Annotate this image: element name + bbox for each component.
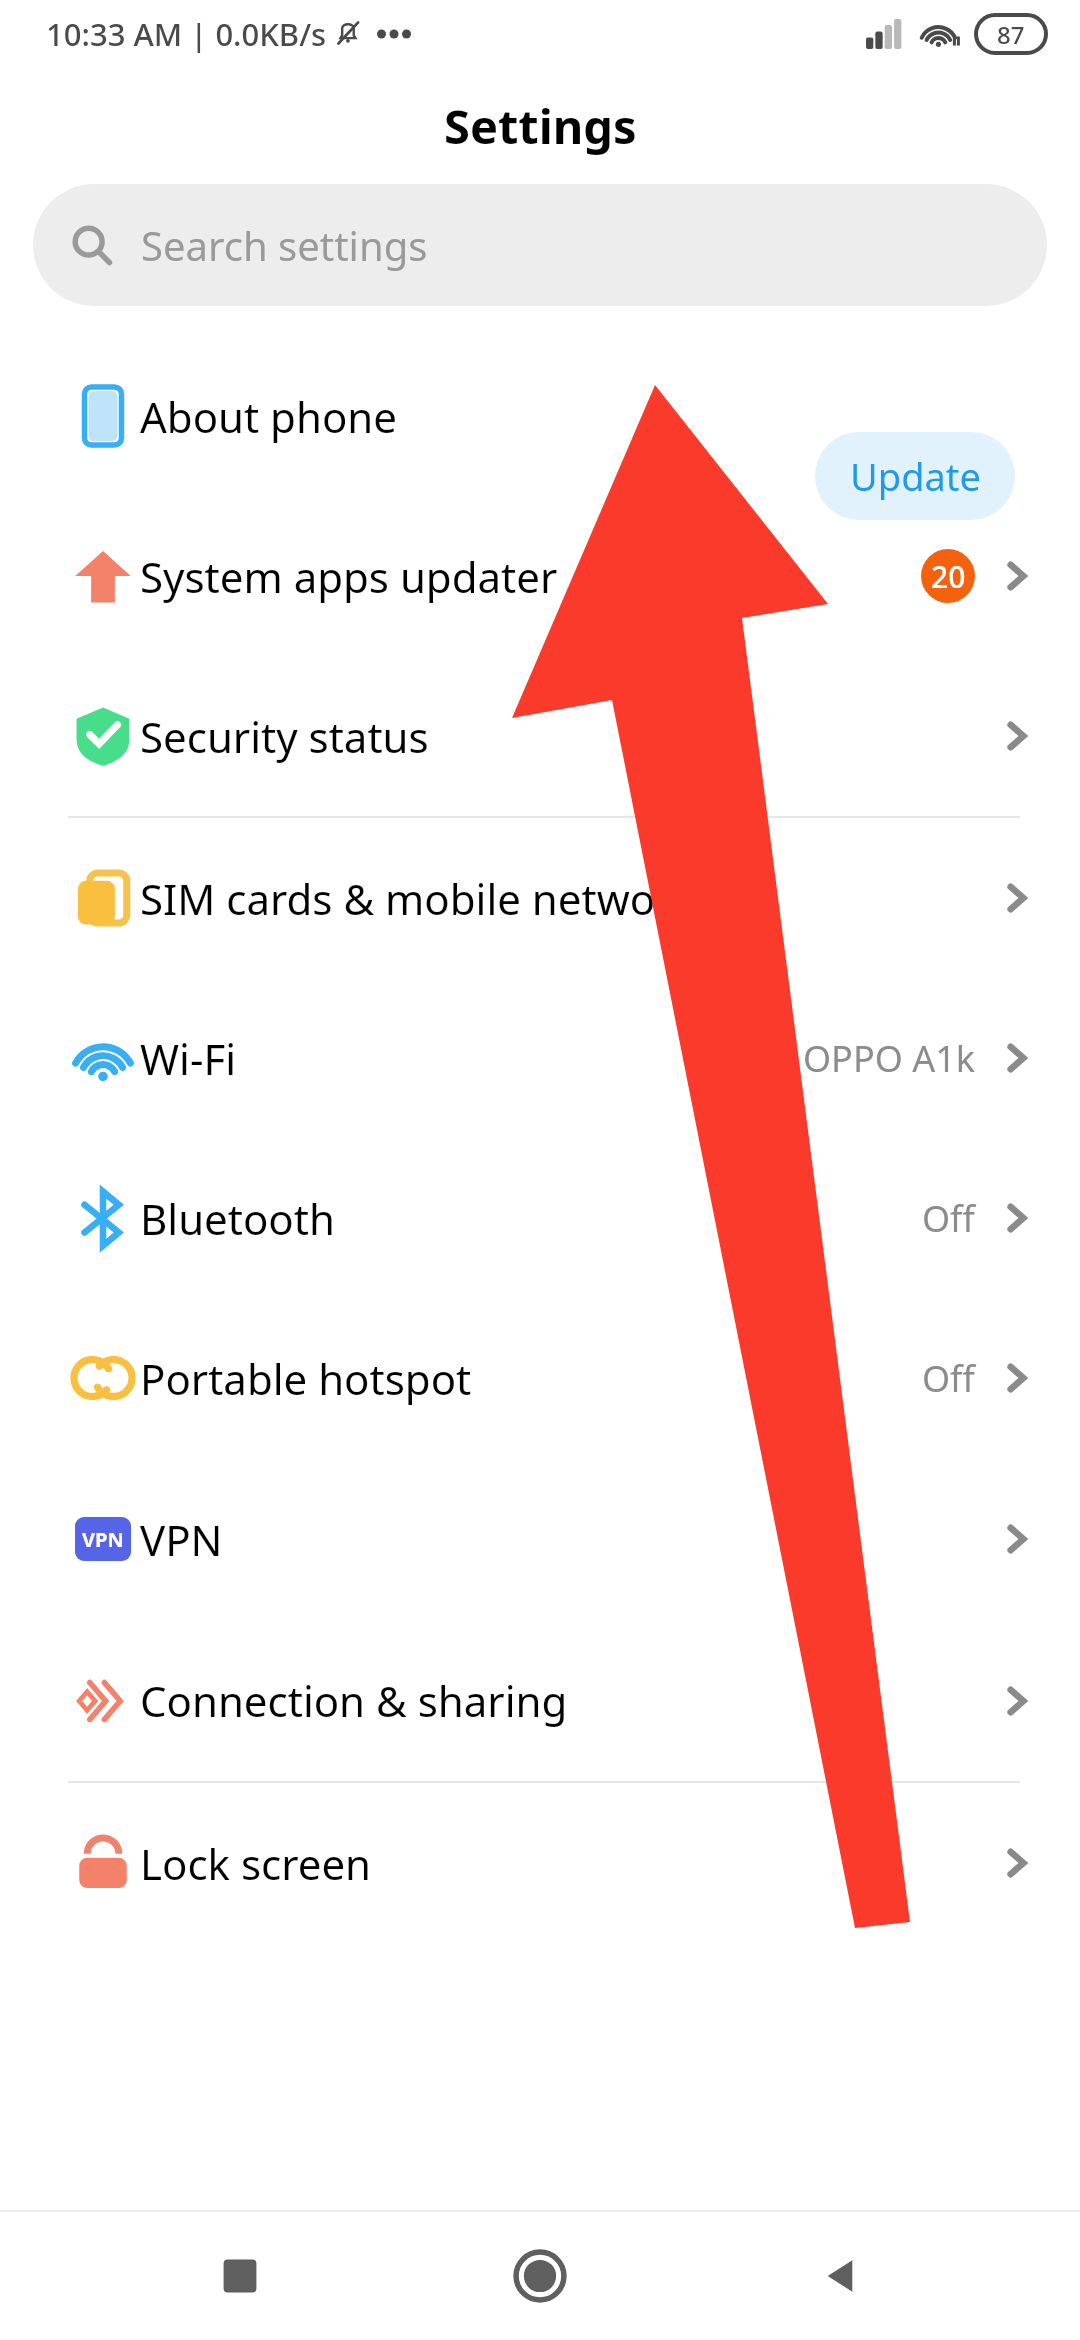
button[interactable]: Back (780, 2216, 900, 2336)
other: VPN (70, 1506, 136, 1572)
staticText: Wi-Fi (140, 1030, 237, 1087)
button[interactable]: Wi-Fi (0, 978, 1080, 1138)
staticText: SIM cards & mobile networks (140, 870, 715, 927)
staticText: Search settings (141, 218, 428, 272)
other: SIM cards and mobile networks (70, 865, 136, 931)
button[interactable]: Security status (0, 656, 1080, 816)
staticText: 10:33 AM | 0.0KB/s (46, 13, 327, 55)
button[interactable]: Bluetooth (0, 1138, 1080, 1298)
staticText: Off (922, 1354, 975, 1403)
staticText: Lock screen (140, 1835, 372, 1892)
staticText: VPN (82, 1526, 124, 1553)
staticText: System apps updater (140, 548, 558, 605)
staticText: Off (922, 1194, 975, 1243)
button[interactable]: About phone (0, 336, 1080, 496)
staticText: About phone (140, 388, 397, 445)
other: Bluetooth (70, 1185, 136, 1251)
other: System apps updater (70, 543, 136, 609)
button[interactable]: VPN (0, 1458, 1080, 1620)
other: Lock screen (70, 1830, 136, 1896)
staticText: Security status (140, 708, 429, 765)
button[interactable]: Lock screen (0, 1783, 1080, 1943)
other: Security status (70, 703, 136, 769)
staticText: Portable hotspot (140, 1350, 472, 1407)
staticText: OPPO A1k (803, 1034, 975, 1083)
button[interactable]: System apps updater (0, 496, 1080, 656)
button[interactable]: Portable hotspot (0, 1298, 1080, 1458)
button[interactable]: SIM cards and mobile networks (0, 818, 1080, 978)
other: Connection and sharing (70, 1668, 136, 1734)
button[interactable]: Recent apps (180, 2216, 300, 2336)
staticText: Bluetooth (140, 1190, 335, 1247)
staticText: Update (850, 450, 981, 502)
staticText: VPN (140, 1511, 223, 1568)
staticText: Settings (444, 94, 637, 158)
other: Wi-Fi (70, 1025, 136, 1091)
button[interactable]: Update (815, 432, 1015, 520)
staticText: 87 (997, 18, 1025, 51)
button[interactable]: Home (480, 2216, 600, 2336)
other: About phone (70, 383, 136, 449)
other: Portable hotspot (70, 1345, 136, 1411)
button[interactable]: Search settings (33, 184, 1047, 306)
button[interactable]: Connection and sharing (0, 1620, 1080, 1781)
staticText: 20 (931, 556, 966, 597)
staticText: Connection & sharing (140, 1672, 568, 1729)
